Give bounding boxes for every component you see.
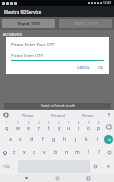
button[interactable]: 8 (74, 120, 84, 133)
staticText: Pleased (51, 113, 65, 118)
button[interactable]: c (29, 146, 39, 159)
button[interactable]: , (11, 160, 17, 173)
staticText: ?123 (3, 165, 10, 169)
button[interactable]: f (37, 133, 48, 146)
button[interactable]: a (5, 133, 15, 146)
button[interactable]: Recents (83, 174, 93, 182)
staticText: m (75, 149, 80, 156)
staticText: Mantra RDService (4, 9, 42, 15)
staticText: Please Enter Your OTP (11, 42, 55, 48)
staticText: ! (88, 149, 90, 156)
button[interactable]: b (50, 146, 61, 159)
button[interactable]: 4 (34, 120, 44, 133)
button[interactable]: CANCEL (75, 64, 92, 71)
button[interactable]: Emoji (91, 160, 99, 173)
button[interactable]: Google (0, 110, 12, 120)
staticText: k (85, 136, 88, 143)
button[interactable]: Home (52, 174, 62, 182)
staticText: g (52, 136, 56, 143)
button[interactable]: ! (83, 146, 94, 159)
button[interactable]: n (61, 146, 72, 159)
staticText: OK (98, 65, 103, 70)
staticText: Switch to Friends to edit (41, 104, 75, 108)
staticText: 0 (98, 121, 100, 125)
staticText: 1 (6, 121, 8, 125)
staticText: f (42, 136, 44, 143)
staticText: 3 (28, 121, 30, 125)
staticText: Please (82, 113, 94, 118)
staticText: h (63, 136, 67, 143)
staticText: 2 (17, 121, 19, 125)
staticText: BASIC_TEST (74, 21, 98, 27)
staticText: CANCEL (77, 65, 90, 70)
staticText: b (54, 149, 58, 156)
staticText: 9 (88, 121, 90, 125)
staticText: d (30, 136, 34, 143)
button[interactable]: 7 (64, 120, 74, 133)
staticText: c (33, 149, 36, 156)
button[interactable]: Backspace (104, 120, 113, 133)
staticText: e (27, 125, 30, 132)
staticText: r (38, 125, 41, 132)
staticText: Rapid_TEST (17, 21, 41, 27)
staticText: 8 (78, 121, 80, 125)
staticText: Please (22, 113, 34, 118)
button[interactable]: x (19, 146, 29, 159)
staticText: 12:49 (103, 1, 112, 5)
button[interactable]: Enter (104, 135, 113, 144)
staticText: w (16, 125, 20, 132)
staticText: p (97, 125, 101, 132)
staticText: y (58, 125, 61, 132)
button[interactable]: g (48, 133, 59, 146)
button[interactable]: 3 (23, 120, 34, 133)
staticText: v (43, 149, 46, 156)
staticText: 5 (48, 121, 50, 125)
staticText: Please Enter OTP (11, 53, 43, 58)
button[interactable]: z (9, 146, 19, 159)
staticText: 7 (68, 121, 70, 125)
button[interactable]: j (70, 133, 81, 146)
button[interactable]: 0 (94, 120, 104, 133)
button[interactable]: हिं (104, 160, 113, 173)
staticText: 4 (38, 121, 40, 125)
staticText: 6 (58, 121, 60, 125)
button[interactable]: 1 (1, 120, 12, 133)
staticText: , (13, 164, 15, 169)
button[interactable]: Rapid_TEST (2, 19, 55, 28)
button[interactable]: m (72, 146, 83, 159)
button[interactable]: Pleased (43, 110, 73, 120)
button[interactable]: v (39, 146, 50, 159)
staticText: ? (98, 149, 101, 156)
staticText: a (9, 136, 12, 143)
button[interactable]: Back (21, 174, 31, 182)
button[interactable]: s (15, 133, 26, 146)
button[interactable]: k (81, 133, 92, 146)
button[interactable]: 5 (44, 120, 54, 133)
staticText: RD SERVICE (3, 32, 23, 37)
button[interactable]: Please (73, 110, 103, 120)
button[interactable]: OK (96, 64, 105, 71)
button[interactable]: l (92, 133, 103, 146)
staticText: हिं (107, 164, 110, 169)
button[interactable]: d (26, 133, 37, 146)
staticText: t (48, 125, 50, 132)
staticText: z (13, 149, 16, 156)
button[interactable]: . (99, 160, 104, 173)
button[interactable]: Voice input (103, 110, 114, 120)
button[interactable]: 2 (12, 120, 23, 133)
button[interactable]: ? (94, 146, 105, 159)
staticText: u (67, 125, 71, 132)
staticText: i (78, 125, 80, 132)
staticText: l (97, 136, 99, 143)
button[interactable]: Shift (1, 146, 9, 159)
button[interactable]: 9 (84, 120, 94, 133)
button[interactable]: ?123 (1, 160, 11, 173)
button[interactable]: 6 (54, 120, 64, 133)
staticText: j (75, 136, 77, 143)
button[interactable]: Delete (105, 146, 113, 159)
button[interactable]: Please (12, 110, 43, 120)
button[interactable]: BASIC_TEST (59, 19, 112, 28)
button[interactable]: Switch to Friends to edit (4, 103, 111, 109)
button[interactable]: h (59, 133, 70, 146)
